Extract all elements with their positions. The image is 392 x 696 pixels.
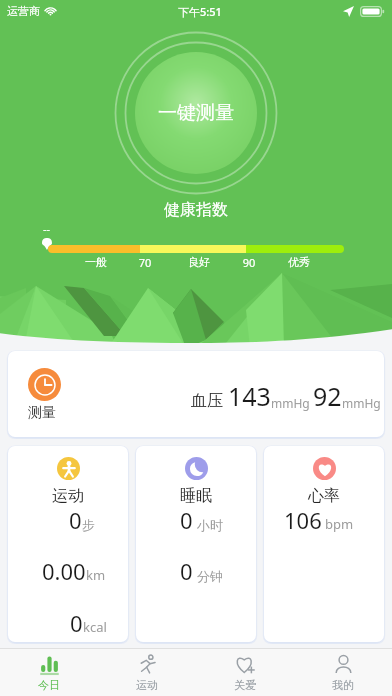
button[interactable]: 运动 [8,446,128,642]
button[interactable]: 一键测量 [112,29,280,197]
staticText: 90 [229,255,269,270]
staticText: 分钟 [197,568,223,584]
staticText: 今日 [38,678,60,692]
staticText: -- [43,221,51,236]
staticText: 运营商 [7,4,40,18]
staticText: 0 [70,608,83,638]
staticText: 143 [228,379,271,413]
staticText: 健康指数 [0,200,392,220]
button[interactable]: 我的 [294,649,392,696]
staticText: 血压 [191,391,223,411]
staticText: km [86,566,106,584]
staticText: 优秀 [279,255,319,269]
staticText: 步 [82,517,95,533]
staticText: 关爱 [234,678,256,692]
staticText: 小时 [197,517,223,533]
staticText: 测量 [28,404,56,422]
staticText: 下午5:51 [178,4,222,19]
staticText: 我的 [332,678,354,692]
staticText: mmHg [271,395,310,411]
staticText: 运动 [52,486,84,506]
staticText: 106 [284,505,322,535]
staticText: 92 [313,379,342,413]
staticText: 0 [69,505,82,535]
staticText: 0 [180,505,193,535]
staticText: bpm [325,515,354,533]
staticText: 睡眠 [180,486,212,506]
button[interactable]: 睡眠 [136,446,256,642]
button[interactable]: 运动 [98,649,196,696]
staticText: 一般 [76,255,116,269]
staticText: kcal [83,618,107,636]
staticText: 70 [125,255,165,270]
staticText: mmHg [342,395,381,411]
button[interactable]: 今日 [0,649,98,696]
staticText: 0.00 [42,556,86,586]
staticText: 心率 [308,486,340,506]
button[interactable]: 关爱 [196,649,294,696]
button[interactable]: 心率 [264,446,384,642]
staticText: 一键测量 [158,101,234,125]
staticText: 0 [180,556,193,586]
staticText: 良好 [179,255,219,269]
staticText: 运动 [136,678,158,692]
button[interactable]: 测量 [8,351,384,437]
